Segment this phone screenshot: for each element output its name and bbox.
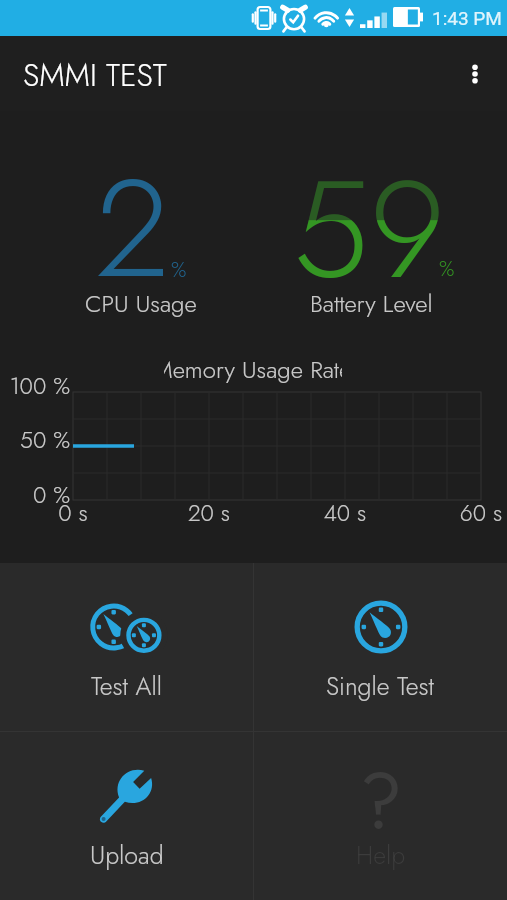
staticText: % <box>439 254 455 284</box>
staticText: 50 % <box>2 423 70 456</box>
staticText: 100 % <box>2 369 70 402</box>
staticText: 40 s <box>320 496 370 529</box>
button[interactable]: Upload <box>0 732 253 900</box>
staticText: 20 s <box>184 496 234 529</box>
staticText: Single Test <box>326 668 435 704</box>
staticText: Upload <box>90 837 164 873</box>
staticText: 60 s <box>456 496 506 529</box>
staticText: % <box>171 255 187 285</box>
staticText: Test All <box>91 668 163 704</box>
staticText: 1:43 PM <box>432 7 502 29</box>
staticText: SMMI TEST <box>23 53 167 98</box>
button[interactable]: Single Test <box>254 563 507 731</box>
staticText: 2 <box>95 130 170 327</box>
staticText: 0 % <box>2 478 70 511</box>
staticText: 59 <box>293 131 446 328</box>
button[interactable]: Test All <box>0 563 253 731</box>
staticText: Help <box>356 837 406 873</box>
staticText: CPU Usage <box>85 286 197 321</box>
staticText: ? <box>359 745 403 858</box>
staticText: 0 s <box>48 496 98 529</box>
staticText: Memory Usage Rate <box>164 352 342 384</box>
staticText: Battery Level <box>310 286 433 321</box>
button[interactable]: More options <box>451 50 499 98</box>
